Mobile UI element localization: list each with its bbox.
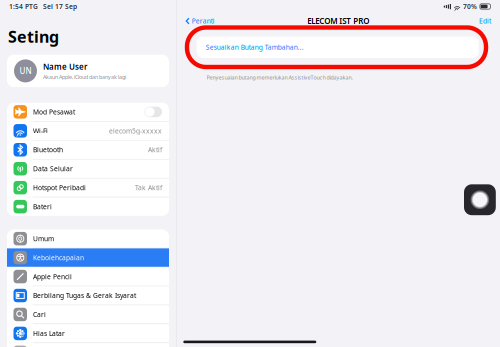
button[interactable]: Wi-Fi — [7, 122, 169, 140]
button[interactable]: Bluetooth — [7, 140, 169, 159]
button[interactable]: Berbilang Tugas & Gerak Isyarat — [7, 286, 169, 305]
button[interactable]: Cari — [7, 305, 169, 324]
staticText: Penyesuaian butang memerlukan AssistiveT… — [206, 74, 352, 81]
button[interactable]: Hotspot Peribadi — [7, 178, 169, 197]
staticText: Akaun Apple, iCloud dan banyak lagi — [43, 73, 126, 80]
staticText: Hias Latar — [33, 329, 65, 338]
button[interactable]: Data Selular — [7, 159, 169, 178]
staticText: ELECOM IST PRO — [307, 16, 369, 26]
staticText: Sel 17 Sep — [43, 2, 77, 11]
staticText: Berbilang Tugas & Gerak Isyarat — [33, 291, 136, 300]
button[interactable]: AssistiveTouch — [464, 184, 496, 215]
staticText: Edit — [479, 17, 491, 25]
button[interactable]: Bunyi — [7, 343, 169, 347]
staticText: 1:54 PTG — [9, 2, 38, 11]
button[interactable]: Hias Latar — [7, 324, 169, 343]
staticText: 70% — [463, 2, 477, 11]
staticText: Tak Aktif — [135, 183, 162, 192]
staticText: Hotspot Peribadi — [33, 183, 86, 192]
staticText: Kebolehcapaian — [33, 253, 84, 262]
staticText: Data Selular — [33, 164, 73, 173]
staticText: Mod Pesawat — [33, 107, 75, 116]
button[interactable]: UN — [7, 55, 169, 87]
button[interactable]: Edit — [479, 17, 491, 25]
staticText: Apple Pencil — [33, 272, 72, 281]
button[interactable]: Umum — [7, 229, 169, 248]
staticText: Seting — [8, 26, 59, 47]
staticText: Aktif — [148, 145, 162, 154]
button[interactable]: Bateri — [7, 197, 169, 216]
staticText: elecom5g-xxxxx — [109, 126, 162, 135]
staticText: Sesuaikan Butang Tambahan... — [206, 43, 304, 52]
staticText: Cari — [33, 310, 46, 319]
staticText: UN — [19, 66, 31, 76]
button[interactable]: Sesuaikan Butang Tambahan... — [197, 36, 479, 58]
staticText: Bluetooth — [33, 145, 63, 154]
staticText: Name User — [43, 61, 87, 72]
staticText: Peranti — [192, 17, 215, 25]
staticText: Bateri — [33, 202, 52, 211]
button[interactable]: Apple Pencil — [7, 267, 169, 286]
button[interactable]: Peranti — [185, 17, 215, 25]
button[interactable]: Mod Pesawat — [7, 103, 169, 121]
staticText: Umum — [33, 234, 54, 243]
staticText: Wi-Fi — [33, 126, 48, 135]
button[interactable]: Kebolehcapaian — [7, 248, 169, 267]
